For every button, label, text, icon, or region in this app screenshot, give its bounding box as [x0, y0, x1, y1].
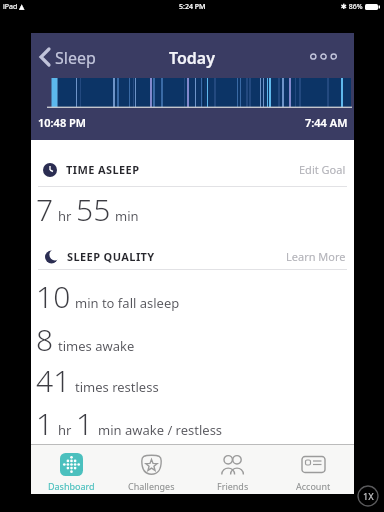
staticText: min — [115, 207, 139, 225]
staticText: 10 — [36, 276, 71, 317]
staticText: 8 — [36, 319, 54, 360]
staticText: iPad ▲ — [3, 2, 25, 12]
staticText: 7 — [36, 189, 54, 230]
staticText: Challenges — [128, 480, 175, 492]
staticText: Dashboard — [48, 480, 95, 492]
staticText: min awake / restless — [98, 421, 223, 439]
staticText: Friends — [217, 480, 249, 492]
staticText: 1 — [36, 403, 54, 444]
staticText: 5:24 PM — [179, 2, 206, 12]
button[interactable]: Sleep — [55, 47, 96, 69]
staticText: TIME ASLEEP — [66, 162, 140, 177]
staticText: min to fall asleep — [75, 294, 180, 312]
staticText: 7:44 AM — [305, 115, 348, 130]
staticText: times restless — [75, 378, 159, 396]
staticText: times awake — [58, 337, 135, 355]
staticText: 41 — [36, 360, 71, 401]
staticText: 1X — [363, 490, 374, 502]
staticText: hr — [58, 421, 72, 439]
staticText: 55 — [76, 189, 111, 230]
staticText: 10:48 PM — [38, 115, 87, 130]
staticText: ✱ 86% — [341, 2, 365, 12]
staticText: SLEEP QUALITY — [67, 249, 155, 264]
staticText: 1 — [76, 403, 94, 444]
button[interactable]: TIME ASLEEP — [31, 162, 346, 177]
button[interactable]: Friends — [192, 445, 273, 494]
staticText: hr — [58, 207, 72, 225]
staticText: Account — [296, 480, 331, 492]
staticText: Learn More — [286, 249, 346, 264]
button[interactable]: Dashboard — [31, 445, 111, 494]
staticText: Edit Goal — [299, 162, 346, 177]
staticText: Today — [169, 47, 216, 69]
button[interactable]: Challenges — [111, 445, 192, 494]
button[interactable]: SLEEP QUALITY — [31, 249, 346, 264]
button[interactable]: 1X — [357, 485, 379, 507]
button[interactable]: Account — [273, 445, 354, 494]
